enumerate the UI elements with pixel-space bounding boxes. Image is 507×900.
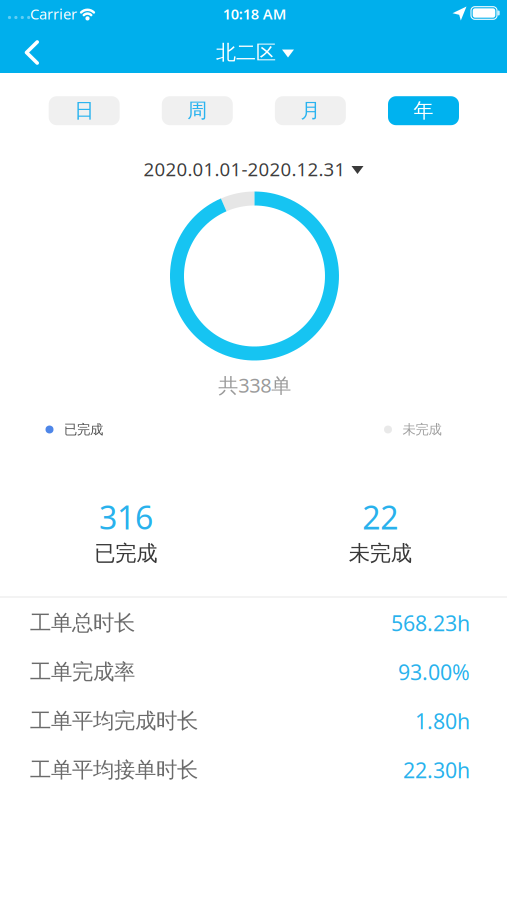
- staticText: 未完成: [402, 421, 441, 438]
- staticText: 22: [362, 496, 398, 538]
- staticText: 周: [187, 98, 207, 123]
- button[interactable]: Back: [14, 32, 50, 72]
- button[interactable]: 周: [162, 96, 233, 125]
- button[interactable]: 月: [275, 96, 346, 125]
- staticText: 日: [74, 98, 94, 123]
- staticText: 已完成: [64, 421, 103, 438]
- staticText: 2020.01.01-2020.12.31: [143, 157, 345, 181]
- staticText: 316: [99, 496, 153, 538]
- staticText: 10:18 AM: [223, 4, 287, 24]
- staticText: 工单平均完成时长: [30, 708, 198, 734]
- staticText: 共338单: [218, 372, 291, 398]
- staticText: Carrier: [30, 4, 77, 24]
- staticText: 工单完成率: [30, 659, 135, 685]
- staticText: 月: [300, 98, 320, 123]
- staticText: 93.00%: [398, 658, 470, 686]
- staticText: 568.23h: [391, 609, 470, 637]
- staticText: 未完成: [349, 540, 412, 567]
- staticText: 1.80h: [415, 707, 470, 735]
- staticText: 北二区: [216, 40, 276, 65]
- button[interactable]: 北二区: [216, 40, 294, 65]
- staticText: 22.30h: [403, 756, 470, 784]
- staticText: 工单平均接单时长: [30, 757, 198, 783]
- staticText: 工单总时长: [30, 610, 135, 636]
- button[interactable]: 年: [388, 96, 459, 125]
- staticText: 年: [413, 98, 433, 123]
- button[interactable]: 日: [49, 96, 120, 125]
- staticText: 已完成: [94, 540, 157, 567]
- button[interactable]: 2020.01.01-2020.12.31: [143, 157, 363, 181]
